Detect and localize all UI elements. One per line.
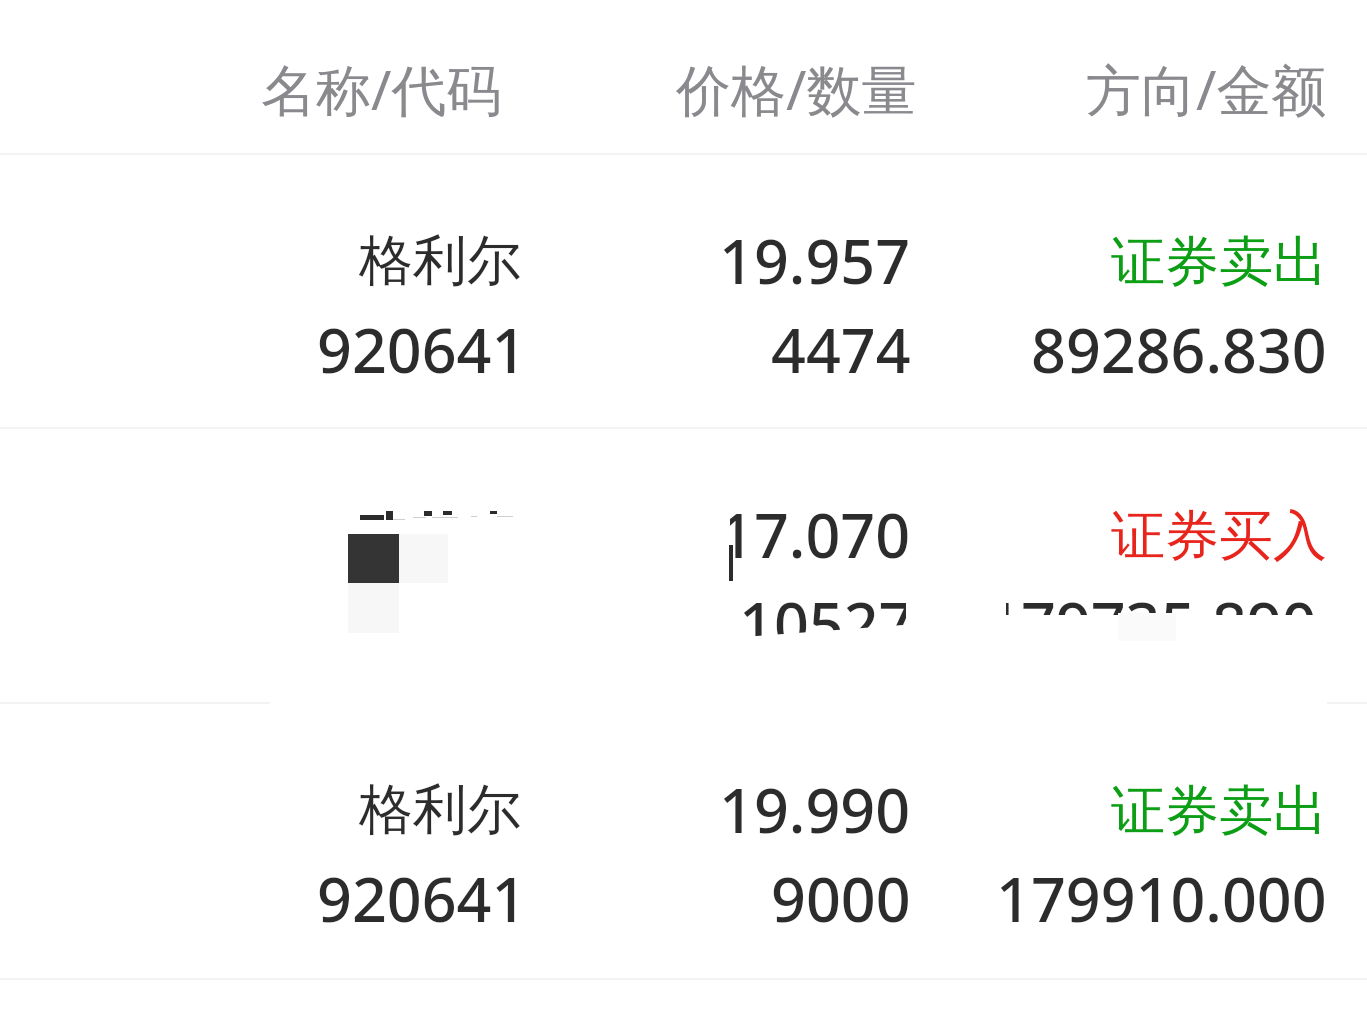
staticText: 17.070: [719, 493, 911, 576]
staticText: 920641: [317, 857, 527, 940]
staticText: 10527: [739, 582, 914, 665]
button[interactable]: 格利尔: [0, 153, 1367, 427]
staticText: 格利尔: [359, 776, 521, 844]
button[interactable]: 17.070: [0, 427, 1367, 701]
staticText: 19.990: [719, 768, 911, 851]
staticText: 179735.890: [986, 582, 1317, 665]
staticText: 4474: [771, 308, 911, 391]
button[interactable]: 价格/数量: [502, 0, 917, 153]
button[interactable]: 名称/代码: [0, 0, 502, 153]
staticText: 格利尔: [359, 227, 521, 295]
staticText: 179910.000: [996, 857, 1327, 940]
staticText: 688621: [317, 582, 527, 665]
staticText: 证券卖出: [1111, 777, 1327, 845]
button[interactable]: 格利尔: [0, 702, 1367, 976]
button[interactable]: 方向/金额: [917, 0, 1367, 153]
staticText: 名称/代码: [261, 51, 502, 126]
staticText: 9000: [771, 857, 911, 940]
staticText: 证券卖出: [1111, 228, 1327, 296]
staticText: 89286.830: [1031, 308, 1327, 391]
staticText: 价格/数量: [676, 51, 917, 126]
staticText: 19.957: [719, 219, 911, 302]
staticText: 证券买入: [1111, 502, 1327, 570]
staticText: 方向/金额: [1086, 51, 1327, 126]
staticText: 920641: [317, 308, 527, 391]
